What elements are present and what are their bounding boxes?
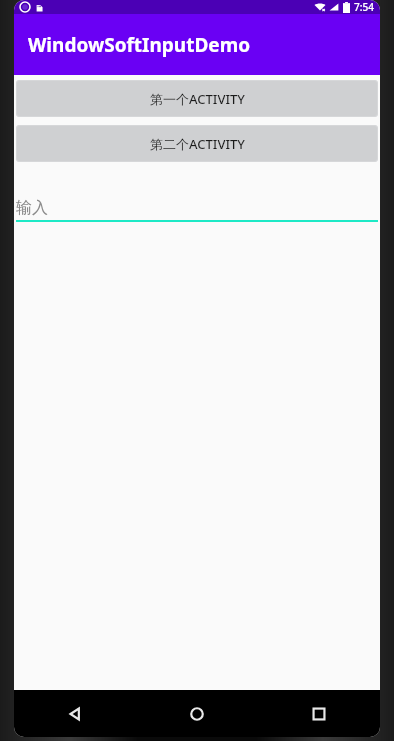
staticText: 7:54	[354, 0, 374, 14]
button[interactable]: 第一个ACTIVITY	[16, 80, 378, 117]
button[interactable]: Back	[14, 690, 136, 737]
staticText: 第一个ACTIVITY	[150, 90, 245, 108]
button[interactable]: Recent apps	[258, 690, 380, 737]
button[interactable]: 第二个ACTIVITY	[16, 125, 378, 162]
button[interactable]: Home	[136, 690, 258, 737]
staticText: 输入	[16, 198, 48, 218]
staticText: 第二个ACTIVITY	[150, 135, 245, 153]
staticText: WindowSoftInputDemo	[28, 32, 251, 58]
button[interactable]: 输入	[16, 192, 378, 222]
